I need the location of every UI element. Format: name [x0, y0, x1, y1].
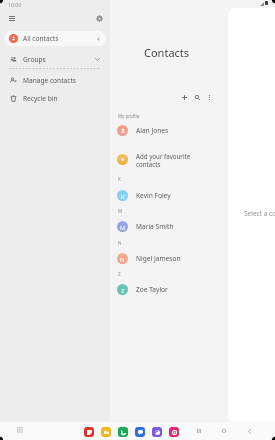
button[interactable]: All contacts — [4, 31, 106, 46]
button[interactable]: Recycle bin — [4, 91, 106, 106]
staticText: Recycle bin — [23, 94, 58, 103]
staticText: Select a contact — [244, 209, 275, 218]
button[interactable]: Z — [110, 283, 227, 295]
staticText: M — [120, 223, 126, 231]
button[interactable]: Groups — [4, 52, 106, 67]
button[interactable]: Create contact — [177, 90, 191, 104]
button[interactable]: App shortcut 2 — [101, 427, 111, 437]
button[interactable]: More options — [202, 90, 216, 104]
button[interactable]: App shortcut 4 — [135, 427, 145, 437]
button[interactable]: App shortcut 3 — [118, 427, 128, 437]
button[interactable]: Settings — [92, 11, 106, 25]
button[interactable]: App shortcut 6 — [169, 427, 179, 437]
staticText: N — [120, 255, 125, 263]
staticText: Maria Smith — [136, 222, 174, 231]
staticText: Zoe Taylor — [136, 285, 168, 294]
staticText: M — [118, 208, 123, 214]
staticText: Add your favourite contacts — [136, 152, 191, 167]
staticText: K — [118, 176, 121, 182]
staticText: Contacts — [144, 45, 190, 60]
button[interactable]: Alan Jones — [110, 124, 227, 136]
staticText: All contacts — [23, 34, 59, 43]
button[interactable]: App shortcut 1 — [84, 427, 94, 437]
button[interactable]: K — [110, 189, 227, 201]
staticText: N — [118, 240, 122, 246]
staticText: K — [121, 192, 125, 200]
staticText: 4 — [97, 36, 100, 42]
staticText: Alan Jones — [136, 126, 169, 135]
button[interactable]: Add your favourite contacts — [110, 152, 227, 167]
staticText: Nigel Jameson — [136, 254, 181, 263]
staticText: My profile — [118, 113, 140, 119]
staticText: Z — [118, 271, 121, 277]
button[interactable]: All apps — [14, 424, 24, 434]
button[interactable]: Search — [190, 90, 204, 104]
staticText: Kevin Foley — [136, 191, 171, 200]
staticText: 10:00 — [8, 1, 22, 8]
button[interactable]: M — [110, 220, 227, 232]
staticText: Groups — [23, 55, 46, 64]
button[interactable]: App shortcut 5 — [152, 427, 162, 437]
staticText: Z — [121, 286, 125, 294]
button[interactable]: Recent apps — [193, 425, 205, 437]
button[interactable]: Manage contacts — [4, 73, 106, 88]
button[interactable]: Open navigation menu — [5, 11, 19, 25]
button[interactable]: Back — [243, 425, 255, 437]
button[interactable]: Home — [218, 425, 230, 437]
staticText: Manage contacts — [23, 76, 76, 85]
button[interactable]: N — [110, 252, 227, 264]
